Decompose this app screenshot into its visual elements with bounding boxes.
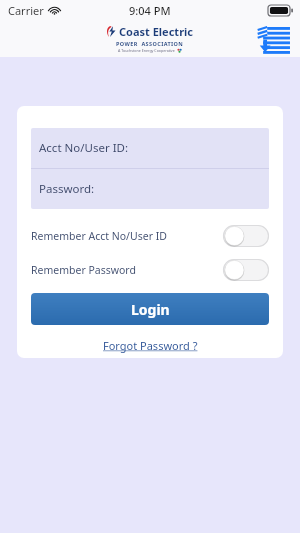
staticText: POWER ASSOCIATION	[116, 40, 184, 47]
staticText: 9:04 PM	[129, 3, 171, 18]
button[interactable]: Menu	[257, 24, 291, 54]
staticText: Carrier	[8, 3, 44, 18]
staticText: Acct No/User ID:	[39, 140, 129, 156]
staticText: Forgot Password ?	[103, 338, 198, 353]
staticText: A Touchstone Energy Cooperative	[118, 48, 175, 53]
button[interactable]: Password:	[31, 169, 269, 209]
staticText: Password:	[39, 181, 95, 197]
button[interactable]: Remember Password	[31, 259, 269, 281]
button[interactable]: Toggle	[223, 259, 269, 281]
staticText: Coast Electric	[119, 24, 194, 39]
button[interactable]: Acct No/User ID:	[31, 128, 269, 168]
button[interactable]: Forgot Password ?	[99, 336, 202, 355]
button[interactable]: Toggle	[223, 225, 269, 247]
staticText: Remember Password	[31, 263, 223, 277]
button[interactable]: Remember Acct No/User ID	[31, 225, 269, 247]
button[interactable]: Login	[31, 293, 269, 325]
staticText: Remember Acct No/User ID	[31, 229, 223, 243]
staticText: Login	[131, 300, 170, 319]
